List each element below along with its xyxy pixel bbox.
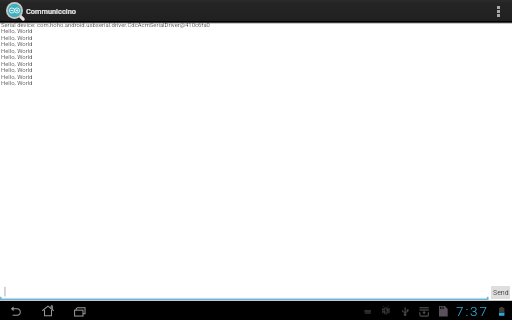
button[interactable]: Back <box>10 305 22 317</box>
staticText: Hello, World <box>1 54 33 61</box>
button[interactable]: Home <box>42 305 54 317</box>
button[interactable]: Recent apps <box>74 305 86 317</box>
button[interactable]: More options <box>488 0 509 21</box>
staticText: Serial device: com.hoho.android.usbseria… <box>1 22 210 29</box>
staticText: Hello, World <box>1 80 33 87</box>
staticText: Send <box>493 289 509 297</box>
button[interactable]: Send <box>491 286 510 299</box>
staticText: Hello, World <box>1 61 33 68</box>
staticText: Hello, World <box>1 41 33 48</box>
staticText: Hello, World <box>1 35 33 42</box>
staticText: Hello, World <box>1 67 33 74</box>
staticText: 7:37 <box>456 303 489 319</box>
staticText: Hello, World <box>1 28 33 35</box>
staticText: Hello, World <box>1 74 33 81</box>
staticText: Hello, World <box>1 48 33 55</box>
staticText: Communiccino <box>26 7 76 16</box>
